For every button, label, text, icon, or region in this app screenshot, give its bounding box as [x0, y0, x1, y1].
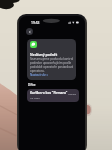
staticText: nákladem: [68, 92, 76, 95]
staticText: 19:53: [31, 20, 40, 24]
staticText: Dříve: [28, 83, 36, 87]
staticText: Ne trvdu: [30, 96, 40, 99]
staticText: Karlibero kos "Firmara": [30, 91, 68, 95]
staticText: Nedávný podnět: [30, 52, 58, 56]
button[interactable]: Karlibero kos "Firmara": [27, 89, 79, 102]
staticText: Nastavit vše »: [30, 73, 48, 77]
button[interactable]: Back: [26, 28, 33, 35]
staticText: Seznamujeme podvodu kontrolu, podrobn up…: [30, 57, 73, 73]
button[interactable]: Nedávný podnět: [27, 39, 76, 80]
